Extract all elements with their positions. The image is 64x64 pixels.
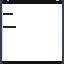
button[interactable]: Navigation bar — [2, 61, 62, 64]
